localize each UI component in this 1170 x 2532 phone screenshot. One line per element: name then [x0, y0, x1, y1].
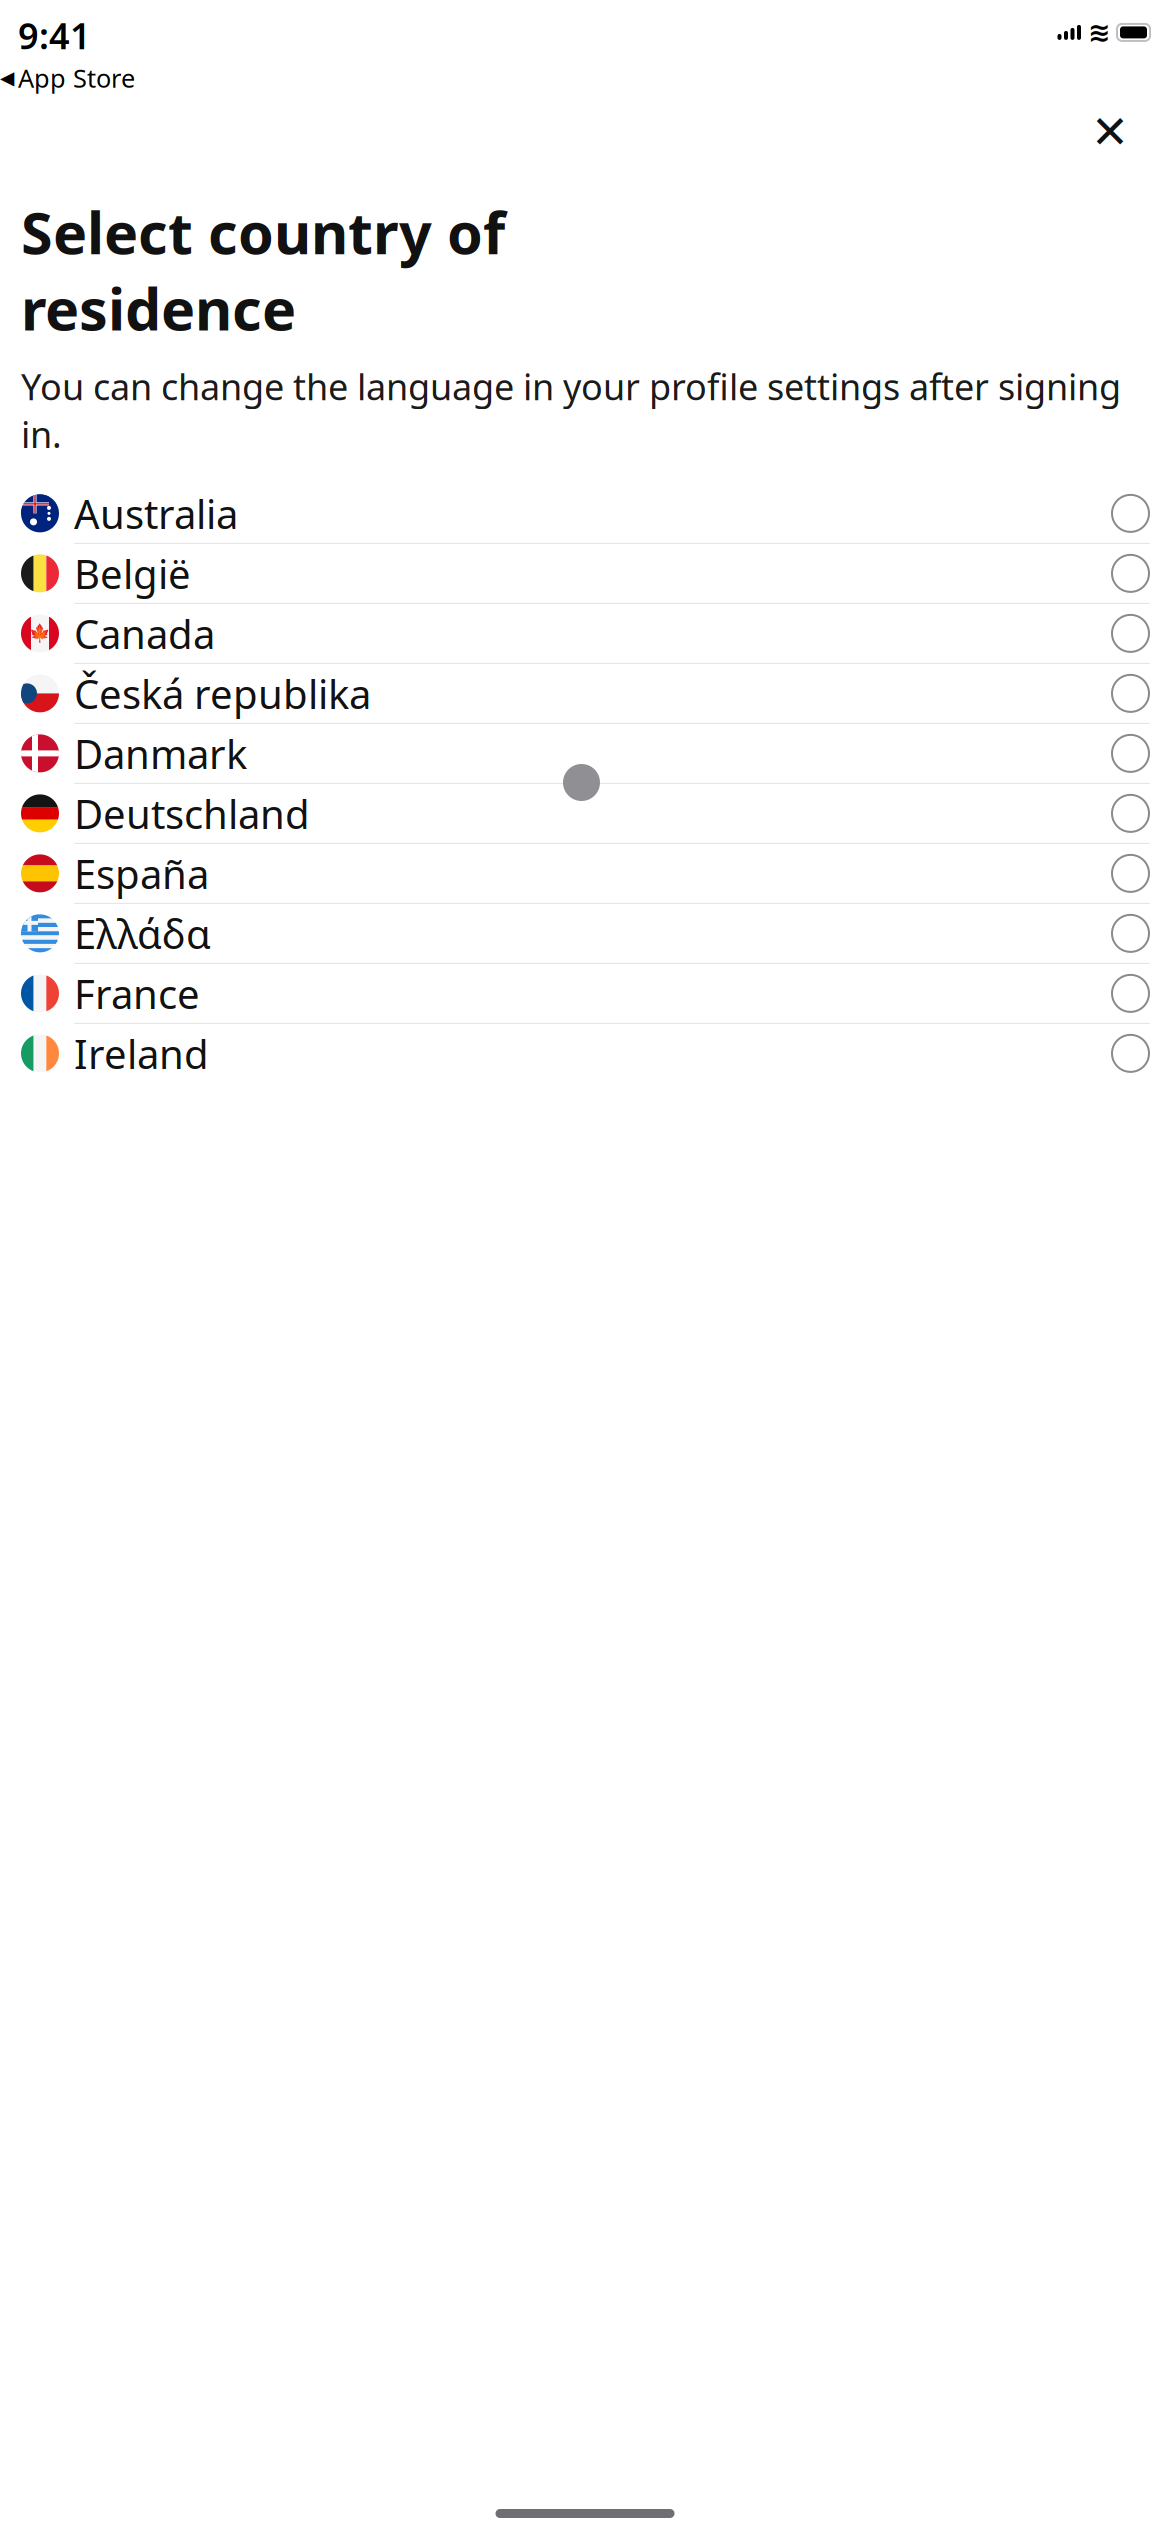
- staticText: España: [74, 847, 209, 900]
- button[interactable]: Close: [1082, 104, 1138, 160]
- staticText: France: [74, 967, 200, 1020]
- staticText: Deutschland: [74, 787, 310, 840]
- staticText: App Store: [18, 61, 135, 95]
- button[interactable]: Česká republika: [0, 664, 1170, 724]
- button[interactable]: Danmark: [0, 724, 1170, 784]
- button[interactable]: België: [0, 544, 1170, 604]
- staticText: ≋: [1088, 17, 1110, 48]
- button[interactable]: Australia: [0, 484, 1170, 544]
- staticText: Select country of residence: [21, 194, 505, 346]
- staticText: Danmark: [74, 727, 247, 780]
- button[interactable]: Ireland: [0, 1024, 1170, 1084]
- staticText: 🍁: [29, 623, 51, 643]
- staticText: Ελλάδα: [74, 907, 211, 960]
- staticText: ✕: [1091, 106, 1129, 158]
- staticText: Česká republika: [74, 667, 371, 720]
- staticText: Australia: [74, 487, 238, 540]
- button[interactable]: España: [0, 844, 1170, 904]
- staticText: België: [74, 547, 191, 600]
- button[interactable]: Ελλάδα: [0, 904, 1170, 964]
- staticText: Ireland: [74, 1027, 209, 1080]
- staticText: 9:41: [18, 11, 91, 59]
- button[interactable]: Deutschland: [0, 784, 1170, 844]
- button[interactable]: 🍁: [0, 604, 1170, 664]
- button[interactable]: France: [0, 964, 1170, 1024]
- staticText: You can change the language in your prof…: [21, 362, 1121, 458]
- staticText: Canada: [74, 607, 215, 660]
- staticText: ◀: [0, 67, 14, 88]
